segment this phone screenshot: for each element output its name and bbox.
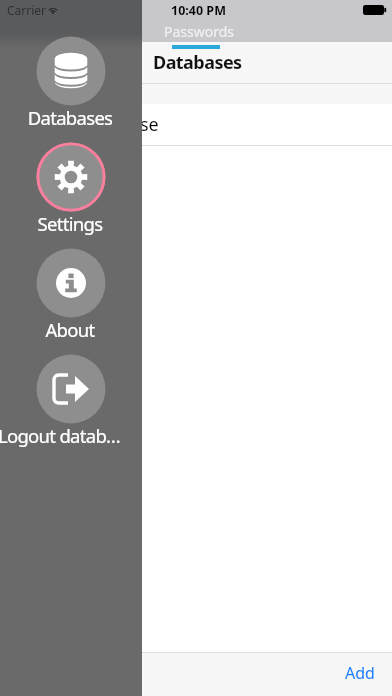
button[interactable]: About	[0, 248, 142, 343]
button[interactable]: Logout database	[0, 354, 142, 449]
staticText: Add	[345, 662, 375, 684]
button[interactable]: Settings	[0, 142, 142, 237]
staticText: 10:40 PM	[171, 2, 226, 19]
button[interactable]: Database	[0, 104, 392, 145]
button[interactable]: Passwords	[158, 20, 241, 43]
staticText: Carrier	[7, 2, 47, 18]
staticText: Databases	[0, 105, 141, 130]
staticText: Settings	[0, 211, 141, 236]
staticText: About	[0, 317, 141, 342]
button[interactable]: Databases	[0, 36, 142, 131]
staticText: Logout datab…	[0, 423, 130, 448]
staticText: Databases	[153, 50, 242, 75]
staticText: Database	[79, 112, 159, 137]
staticText: Passwords	[164, 22, 235, 41]
button[interactable]: Add	[339, 658, 381, 688]
